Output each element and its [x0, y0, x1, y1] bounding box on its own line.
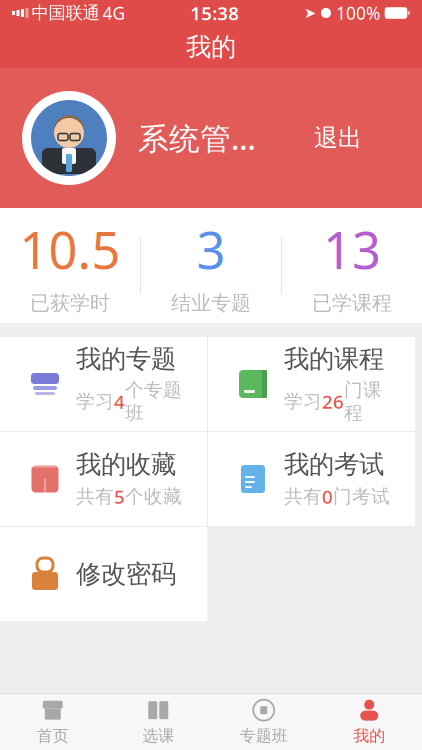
- staticText: 15:38: [190, 1, 239, 25]
- staticText: 退出: [314, 123, 362, 153]
- staticText: 13: [323, 216, 381, 283]
- staticText: 中国联通: [31, 2, 99, 24]
- staticText: 已获学时: [30, 291, 110, 315]
- staticText: 修改密码: [76, 558, 176, 589]
- staticText: 3: [196, 216, 225, 283]
- staticText: 4G: [102, 1, 125, 24]
- staticText: 首页: [37, 726, 69, 746]
- button[interactable]: 退出: [296, 113, 380, 163]
- staticText: 100%: [336, 1, 380, 24]
- staticText: 学习: [76, 390, 114, 413]
- staticText: 学习: [284, 390, 322, 413]
- button[interactable]: 首页: [0, 694, 105, 750]
- staticText: 26: [322, 389, 344, 414]
- staticText: 4: [114, 389, 125, 414]
- button[interactable]: 系统管…: [116, 118, 256, 158]
- button[interactable]: 我的考试: [208, 432, 415, 526]
- staticText: 个收藏: [125, 485, 182, 508]
- staticText: ➤: [304, 5, 316, 21]
- staticText: 我的: [353, 726, 385, 746]
- staticText: 结业专题: [171, 291, 251, 315]
- staticText: 我的专题: [76, 343, 176, 375]
- staticText: 共有: [284, 485, 322, 508]
- staticText: 5: [114, 484, 125, 509]
- staticText: 门考试: [333, 485, 390, 508]
- staticText: 我的课程: [284, 343, 384, 375]
- staticText: 已学课程: [312, 291, 392, 315]
- staticText: 系统管…: [138, 118, 256, 158]
- staticText: 专题班: [240, 726, 288, 746]
- staticText: 共有: [76, 485, 114, 508]
- button[interactable]: 我的课程: [208, 337, 415, 431]
- button[interactable]: 我的专题: [0, 337, 207, 431]
- staticText: 10.5: [19, 216, 120, 283]
- staticText: 我的收藏: [76, 449, 176, 480]
- button[interactable]: 修改密码: [0, 527, 207, 621]
- staticText: 0: [322, 484, 333, 509]
- staticText: 门课程: [344, 379, 382, 424]
- staticText: 选课: [142, 726, 174, 746]
- staticText: 个专题班: [125, 379, 182, 424]
- button[interactable]: 专题班: [211, 694, 316, 750]
- staticText: 我的考试: [284, 449, 384, 480]
- button[interactable]: 我的: [316, 694, 422, 750]
- button[interactable]: 选课: [105, 694, 211, 750]
- button[interactable]: 我的收藏: [0, 432, 207, 526]
- staticText: 我的: [186, 31, 236, 62]
